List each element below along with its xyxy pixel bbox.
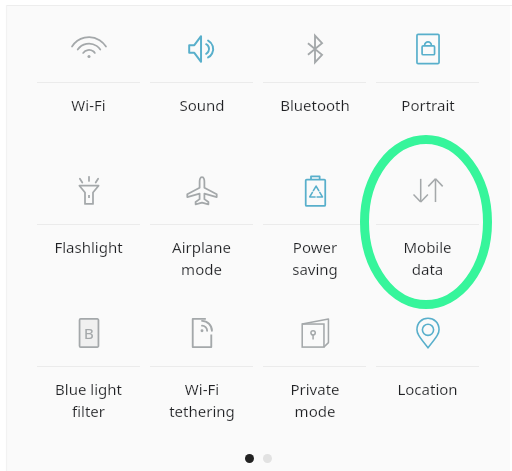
staticText: Sound: [179, 95, 225, 115]
other: Page 2: [263, 454, 272, 463]
button[interactable]: Mobile data: [371, 160, 484, 302]
other: Page 1: [245, 454, 254, 463]
staticText: Wi-Fi tethering: [169, 379, 235, 422]
staticText: Power saving: [292, 237, 338, 280]
button[interactable]: Power saving: [258, 160, 371, 302]
staticText: Blue light filter: [55, 379, 122, 422]
button[interactable]: Portrait: [371, 18, 484, 160]
button[interactable]: Sound: [145, 18, 258, 160]
button[interactable]: Flashlight: [32, 160, 145, 302]
button[interactable]: Bluetooth: [258, 18, 371, 160]
button[interactable]: Location: [371, 302, 484, 444]
staticText: B: [84, 323, 94, 343]
button[interactable]: Private mode: [258, 302, 371, 444]
staticText: Bluetooth: [280, 95, 350, 115]
staticText: Portrait: [401, 95, 455, 115]
button[interactable]: Wi-Fi tethering: [145, 302, 258, 444]
staticText: Private mode: [290, 379, 340, 422]
button[interactable]: Blue light filter: [32, 302, 145, 444]
button[interactable]: Airplane mode: [145, 160, 258, 302]
staticText: Airplane mode: [172, 237, 231, 280]
staticText: Mobile data: [403, 237, 452, 280]
staticText: Location: [397, 379, 458, 399]
staticText: Flashlight: [54, 237, 123, 257]
button[interactable]: Wi-Fi: [32, 18, 145, 160]
staticText: Wi-Fi: [71, 95, 106, 115]
